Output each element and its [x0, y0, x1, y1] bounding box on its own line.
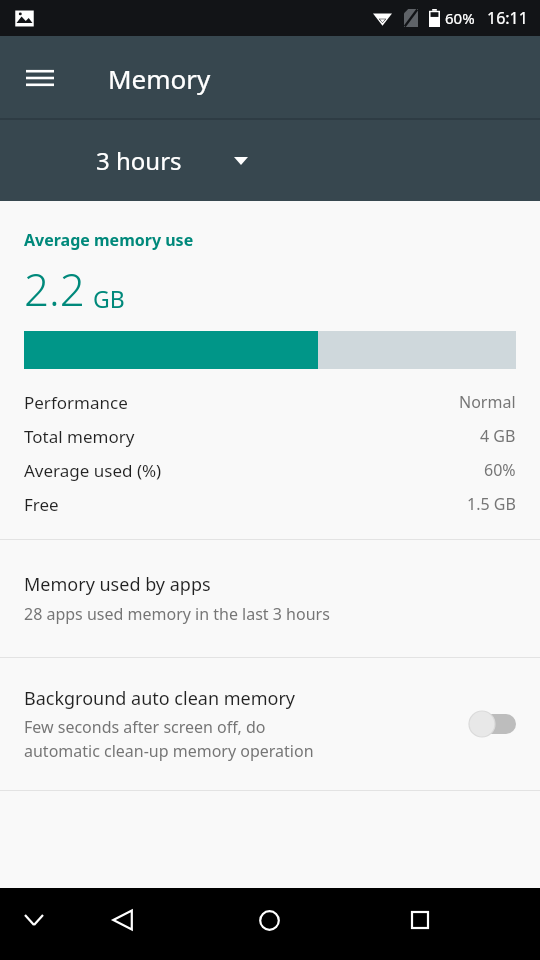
staticText: GB — [93, 283, 125, 314]
button[interactable]: Home — [246, 897, 292, 943]
button[interactable]: Background auto clean memory — [0, 658, 540, 790]
button[interactable]: Memory used by apps — [0, 540, 540, 657]
button[interactable]: Recent apps — [397, 897, 443, 943]
staticText: 4 GB — [480, 425, 516, 447]
button[interactable]: Hide keyboard — [12, 898, 56, 942]
staticText: 60% — [445, 8, 475, 28]
staticText: 28 apps used memory in the last 3 hours — [24, 603, 330, 625]
staticText: 1.5 GB — [467, 493, 516, 515]
staticText: 3 hours — [96, 144, 182, 177]
button[interactable]: Back — [100, 897, 146, 943]
staticText: Background auto clean memory — [24, 686, 296, 711]
staticText: Average memory use — [24, 229, 194, 251]
staticText: 60% — [484, 459, 516, 481]
staticText: 2.2 — [24, 259, 85, 319]
staticText: Total memory — [24, 425, 135, 448]
staticText: Normal — [459, 391, 516, 413]
staticText: Memory used by apps — [24, 572, 211, 597]
staticText: Memory — [108, 61, 211, 96]
staticText: Average used (%) — [24, 459, 162, 482]
staticText: Performance — [24, 391, 128, 414]
button[interactable]: Open navigation drawer — [12, 50, 68, 106]
staticText: automatic clean-up memory operation — [24, 740, 314, 762]
button[interactable]: 3 hours — [96, 144, 248, 177]
button[interactable]: Background auto clean memory toggle — [468, 708, 520, 740]
staticText: Few seconds after screen off, do — [24, 716, 266, 738]
staticText: Free — [24, 493, 59, 516]
staticText: 16:11 — [487, 7, 528, 29]
